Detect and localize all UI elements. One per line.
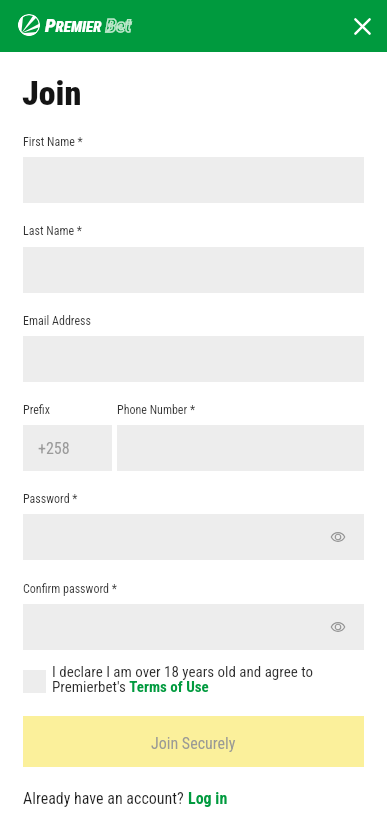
- staticText: First Name *: [23, 135, 83, 149]
- button[interactable]: [23, 604, 364, 650]
- staticText: Confirm password *: [23, 582, 117, 596]
- button[interactable]: Log in: [188, 789, 228, 808]
- staticText: Prefix: [23, 403, 50, 417]
- staticText: I declare I am over 18 years old and agr…: [52, 663, 364, 696]
- staticText: +258: [38, 439, 70, 458]
- staticText: Password *: [23, 492, 78, 506]
- button[interactable]: [23, 514, 364, 560]
- staticText: Log in: [188, 789, 228, 808]
- button[interactable]: I declare I am over 18 years old and agr…: [23, 663, 364, 696]
- staticText: Last Name *: [23, 224, 82, 238]
- staticText: Join Securely: [151, 734, 236, 753]
- button[interactable]: Close: [344, 8, 380, 44]
- staticText: Email Address: [23, 314, 91, 328]
- staticText: Phone Number *: [117, 403, 196, 417]
- staticText: Join: [22, 73, 82, 113]
- button[interactable]: Join Securely: [23, 716, 364, 767]
- staticText: Already have an account?: [23, 789, 188, 808]
- staticText: PREMIER Bet: [45, 14, 131, 36]
- button[interactable]: +258: [23, 425, 112, 471]
